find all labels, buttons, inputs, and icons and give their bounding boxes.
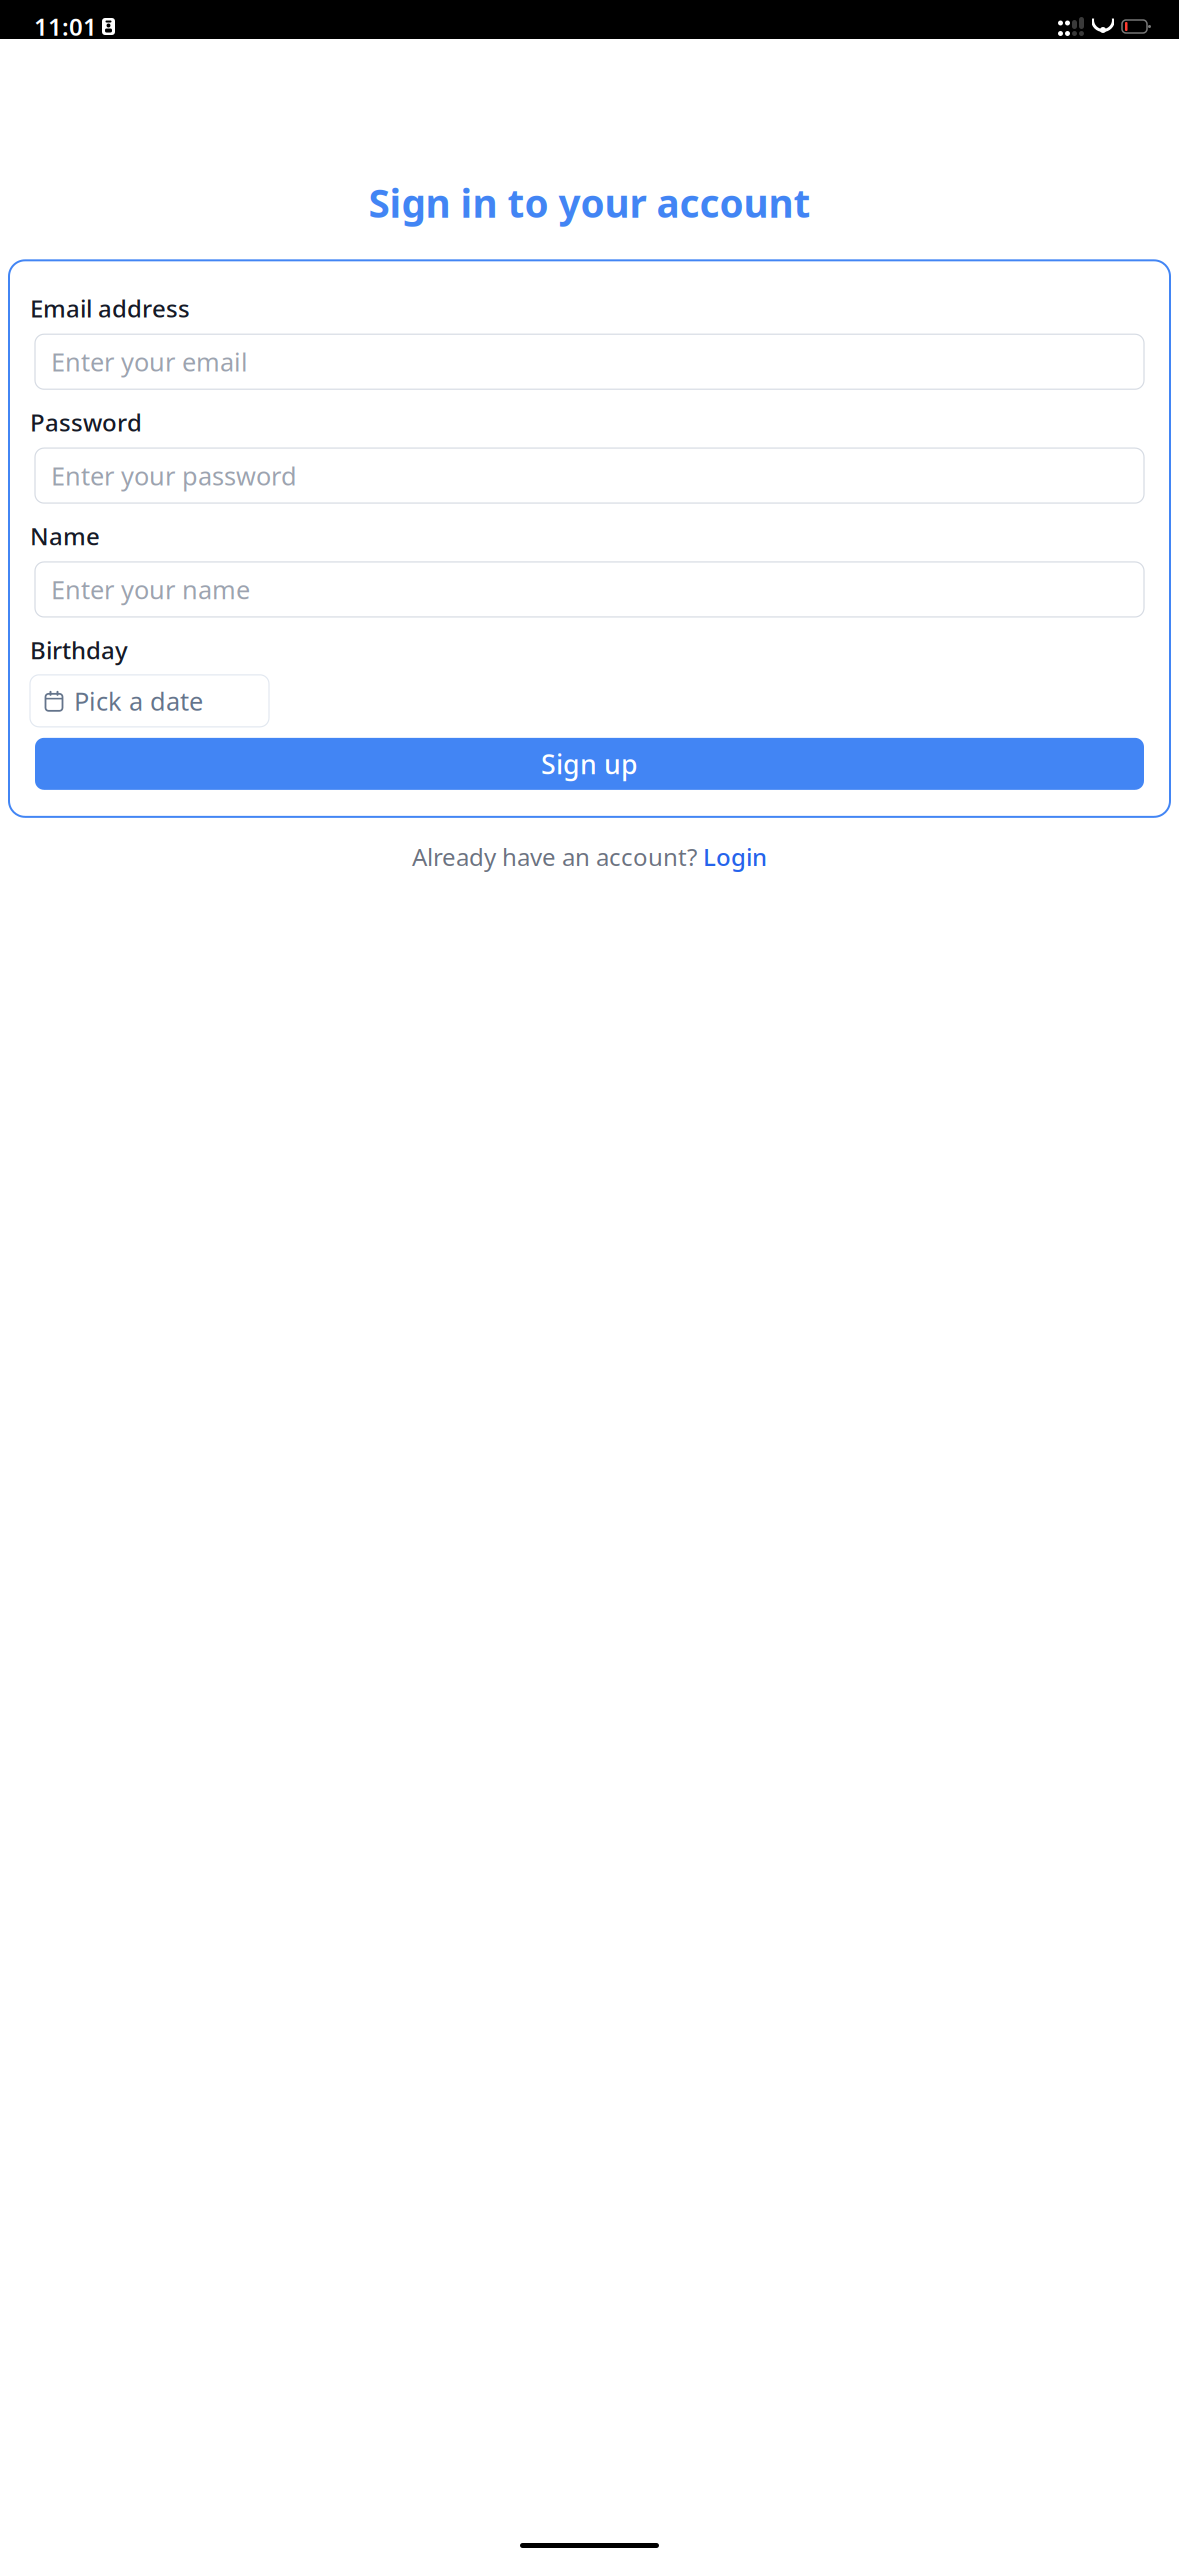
staticText: Enter your name bbox=[51, 573, 250, 606]
staticText: Email address bbox=[30, 292, 190, 324]
staticText: Already have an account? bbox=[412, 841, 697, 873]
staticText: Name bbox=[30, 520, 100, 552]
button[interactable]: Sign up bbox=[30, 738, 1149, 790]
staticText: Pick a date bbox=[74, 684, 203, 718]
staticText: Login bbox=[703, 841, 767, 873]
staticText: Enter your password bbox=[51, 459, 297, 492]
staticText: Sign up bbox=[541, 746, 638, 781]
staticText: Password bbox=[30, 406, 142, 438]
staticText: Sign in to your account bbox=[368, 177, 810, 228]
staticText: 11:01 bbox=[34, 11, 97, 42]
button[interactable]: Enter your name bbox=[30, 562, 1149, 617]
staticText: Birthday bbox=[30, 634, 128, 666]
button[interactable]: Already have an account? bbox=[400, 835, 779, 879]
button[interactable]: Pick a date bbox=[30, 675, 269, 727]
button[interactable]: Enter your email bbox=[30, 334, 1149, 389]
staticText: Enter your email bbox=[51, 345, 248, 378]
button[interactable]: Enter your password bbox=[30, 448, 1149, 503]
